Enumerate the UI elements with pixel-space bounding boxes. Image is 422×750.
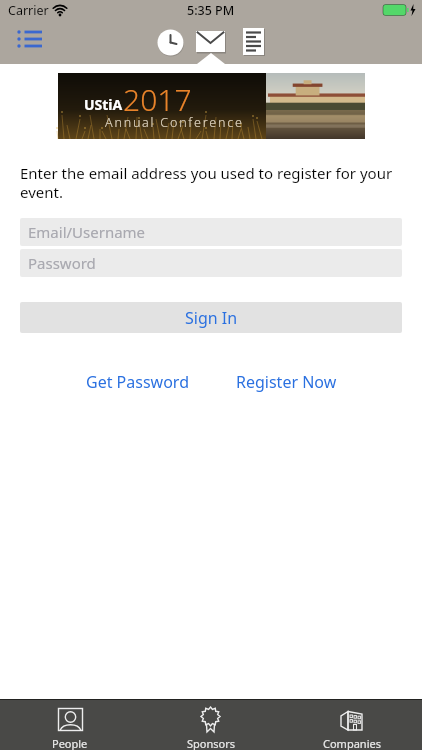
staticText: UStiA bbox=[84, 95, 123, 114]
button[interactable]: Sponsors bbox=[140, 700, 281, 750]
button[interactable] bbox=[153, 27, 187, 57]
staticText: Password bbox=[28, 253, 96, 273]
staticText: People bbox=[52, 736, 88, 750]
button[interactable]: Get Password bbox=[86, 371, 189, 393]
staticText: Companies bbox=[323, 736, 381, 750]
staticText: Sign In bbox=[185, 307, 238, 329]
button[interactable]: Companies bbox=[281, 700, 422, 750]
staticText: Carrier bbox=[8, 2, 49, 19]
button[interactable]: Register Now bbox=[236, 371, 337, 393]
staticText: Email/Username bbox=[28, 222, 146, 242]
staticText: Annual Conference bbox=[105, 114, 244, 131]
staticText: Get Password bbox=[86, 371, 189, 393]
button[interactable]: Password bbox=[20, 249, 402, 277]
staticText: Enter the email address you used to regi… bbox=[20, 163, 393, 203]
button[interactable] bbox=[193, 27, 229, 57]
staticText: Register Now bbox=[236, 371, 337, 393]
button[interactable]: Sign In bbox=[20, 302, 402, 333]
button[interactable]: People bbox=[0, 700, 140, 750]
staticText: 5:35 PM bbox=[187, 2, 235, 19]
button[interactable] bbox=[239, 26, 269, 58]
button[interactable]: UStiA bbox=[58, 73, 365, 139]
button[interactable] bbox=[12, 24, 48, 54]
staticText: Sponsors bbox=[187, 736, 235, 750]
staticText: 2017 bbox=[123, 79, 192, 120]
button[interactable]: Email/Username bbox=[20, 218, 402, 246]
